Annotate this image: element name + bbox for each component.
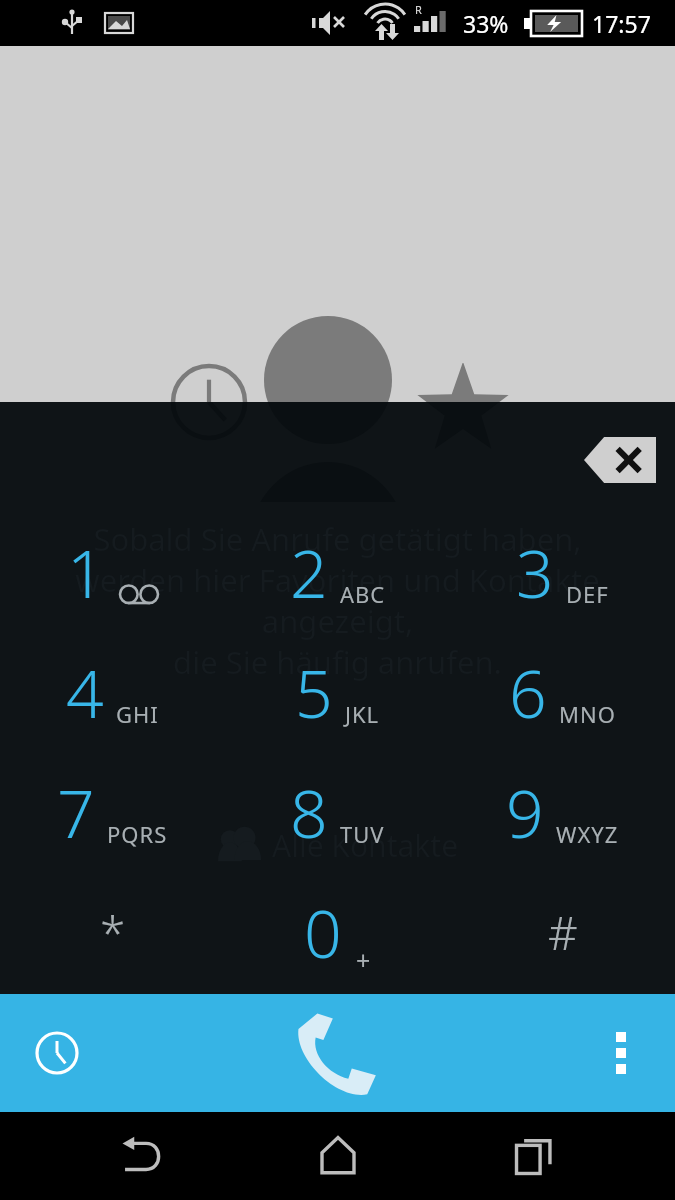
button[interactable]: Call (278, 994, 398, 1112)
staticText: 7 (57, 767, 95, 857)
button[interactable]: # (450, 872, 675, 992)
staticText: 4 (66, 647, 104, 737)
button[interactable]: Recent apps (479, 1112, 589, 1200)
staticText: # (548, 901, 578, 964)
button[interactable]: Back (86, 1112, 196, 1200)
staticText: 8 (290, 767, 328, 857)
button[interactable]: 7 (0, 752, 225, 872)
button[interactable]: * (0, 872, 225, 992)
staticText: MNO (559, 699, 616, 729)
button[interactable]: Backspace (584, 437, 656, 483)
staticText: * (100, 901, 126, 964)
button[interactable]: 5 (225, 632, 450, 752)
staticText: TUV (340, 819, 385, 849)
staticText: 17:57 (592, 8, 651, 39)
staticText: 1 (67, 527, 105, 617)
button[interactable]: Call history (18, 1014, 96, 1092)
staticText: 3 (516, 527, 554, 617)
staticText: PQRS (107, 819, 168, 849)
button[interactable]: 1 (0, 512, 225, 632)
staticText: 33% (463, 8, 509, 39)
button[interactable]: 3 (450, 512, 675, 632)
staticText: Alle Kontakte (272, 825, 459, 866)
staticText: Sobald Sie Anrufe getätigt haben, werden… (75, 518, 600, 683)
button[interactable]: 2 (225, 512, 450, 632)
staticText: 2 (290, 527, 328, 617)
staticText: WXYZ (556, 819, 619, 849)
staticText: ABC (340, 579, 386, 609)
button[interactable]: Home (283, 1112, 393, 1200)
staticText: R (415, 2, 422, 17)
staticText: 5 (295, 647, 333, 737)
staticText: 6 (509, 647, 547, 737)
button[interactable]: 6 (450, 632, 675, 752)
staticText: 9 (506, 767, 544, 857)
staticText: GHI (116, 699, 159, 729)
staticText: 0 (304, 887, 342, 977)
staticText: DEF (566, 579, 609, 609)
staticText: JKL (345, 699, 380, 729)
button[interactable]: 0 (225, 872, 450, 992)
button[interactable]: More options (585, 1017, 657, 1089)
button[interactable]: 4 (0, 632, 225, 752)
staticText: + (356, 943, 371, 977)
button[interactable]: 9 (450, 752, 675, 872)
button[interactable]: 8 (225, 752, 450, 872)
